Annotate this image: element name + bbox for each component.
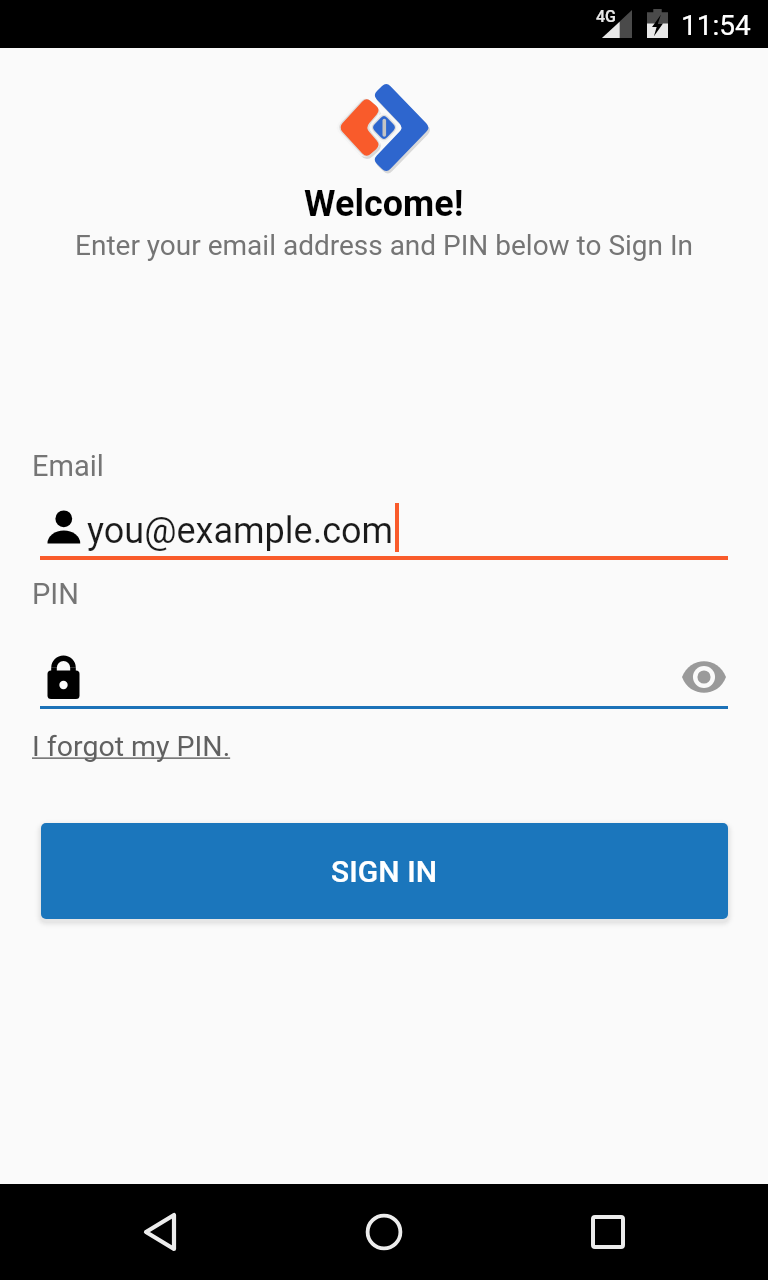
staticText: 4G <box>596 7 616 26</box>
staticText: SIGN IN <box>331 854 438 889</box>
button[interactable]: Recent apps <box>560 1184 656 1280</box>
button[interactable] <box>40 650 660 706</box>
button[interactable]: I forgot my PIN. <box>32 730 231 763</box>
staticText: I forgot my PIN. <box>32 730 231 763</box>
staticText: Enter your email address and PIN below t… <box>75 229 694 262</box>
button[interactable]: SIGN IN <box>41 823 728 919</box>
button[interactable]: Back <box>112 1184 208 1280</box>
staticText: Email <box>32 449 104 483</box>
button[interactable]: you@example.com <box>40 500 728 556</box>
button[interactable]: Home <box>336 1184 432 1280</box>
staticText: 11:54 <box>681 9 751 42</box>
staticText: Welcome! <box>304 183 464 225</box>
staticText: PIN <box>32 577 79 611</box>
staticText: you@example.com <box>87 510 394 552</box>
button[interactable]: Show PIN <box>680 653 728 701</box>
